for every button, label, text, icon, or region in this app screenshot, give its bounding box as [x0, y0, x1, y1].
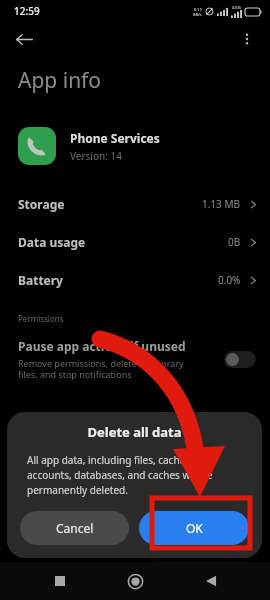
staticText: Phone Services — [70, 130, 160, 146]
staticText: Pause app activity if unused — [18, 338, 186, 354]
staticText: Version: 14 — [70, 149, 122, 163]
button[interactable]: Pause app activity toggle — [224, 351, 256, 368]
staticText: 12:59 — [14, 4, 40, 18]
button[interactable]: Pause app activity if unused — [0, 338, 270, 381]
staticText: 1.13 MB — [202, 197, 241, 211]
staticText: OK — [186, 520, 203, 536]
staticText: Delete all data — [7, 423, 262, 441]
button[interactable]: Home — [119, 565, 151, 597]
button[interactable]: Cancel — [20, 511, 129, 545]
staticText: Cancel — [56, 520, 94, 536]
staticText: KB/s — [193, 12, 202, 17]
staticText: 0B — [228, 235, 241, 249]
button[interactable]: Storage — [0, 185, 270, 223]
staticText: Permissions — [18, 313, 64, 324]
button[interactable]: Recents — [44, 565, 76, 597]
button[interactable]: Back — [8, 23, 40, 55]
staticText: Storage — [18, 196, 65, 212]
button[interactable]: OK — [139, 511, 249, 545]
staticText: App info — [18, 66, 102, 95]
staticText: 4.5G — [232, 5, 241, 10]
staticText: 0.11 — [194, 7, 202, 12]
button[interactable]: Phone Services — [0, 121, 270, 171]
staticText: 0.0% — [218, 273, 241, 287]
button[interactable]: Data usage — [0, 223, 270, 261]
staticText: Battery — [18, 272, 63, 288]
button[interactable]: Back — [195, 565, 227, 597]
staticText: Data usage — [18, 234, 86, 250]
staticText: All app data, including files, caches, a… — [27, 453, 213, 497]
button[interactable]: More options — [232, 24, 262, 54]
staticText: Remove permissions, delete temporary fil… — [18, 357, 184, 381]
button[interactable]: Battery — [0, 261, 270, 299]
